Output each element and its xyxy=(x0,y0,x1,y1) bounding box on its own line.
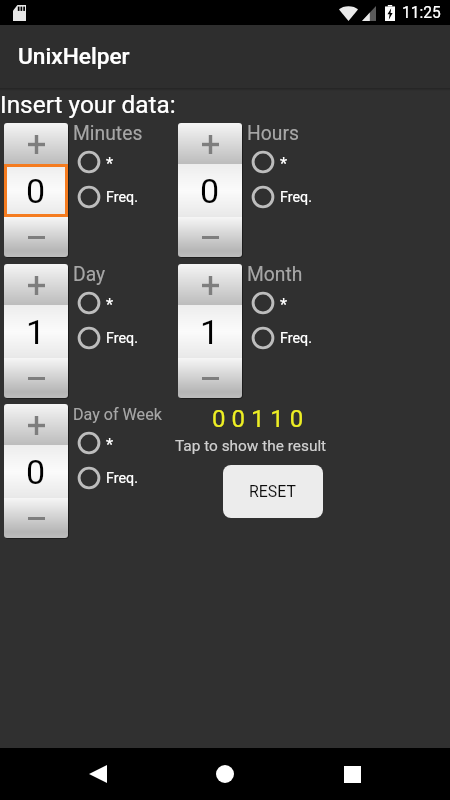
button[interactable]: Freq. xyxy=(251,326,312,350)
staticText: Freq. xyxy=(106,330,138,347)
staticText: Minutes xyxy=(73,122,143,145)
button[interactable]: Decrease xyxy=(178,358,242,398)
button[interactable]: * xyxy=(251,150,288,174)
button[interactable]: Freq. xyxy=(77,466,138,490)
button[interactable]: Increase xyxy=(4,264,68,305)
staticText: 1 xyxy=(26,312,46,352)
staticText: * xyxy=(106,435,114,454)
button[interactable]: Decrease xyxy=(178,217,242,257)
button[interactable]: 1 xyxy=(4,305,68,358)
button[interactable]: 1 xyxy=(178,305,242,358)
staticText: 11:25 xyxy=(402,4,441,22)
button[interactable]: Recents xyxy=(326,748,378,800)
staticText: * xyxy=(106,154,114,173)
button[interactable]: Freq. xyxy=(77,185,138,209)
staticText: 1 xyxy=(200,312,220,352)
staticText: Freq. xyxy=(106,470,138,487)
button[interactable]: Increase xyxy=(4,404,68,445)
button[interactable]: Increase xyxy=(178,123,242,164)
button[interactable]: 0 xyxy=(178,164,242,217)
staticText: 0 0 1 1 0 xyxy=(212,405,304,433)
button[interactable]: * xyxy=(77,150,114,174)
staticText: UnixHelper xyxy=(18,43,130,70)
button[interactable]: Increase xyxy=(4,123,68,164)
staticText: 0 xyxy=(26,452,46,492)
button[interactable]: Decrease xyxy=(4,217,68,257)
staticText: Month xyxy=(247,263,303,286)
staticText: Day of Week xyxy=(73,405,162,424)
button[interactable]: * xyxy=(77,431,114,455)
button[interactable]: * xyxy=(77,291,114,315)
button[interactable]: Back xyxy=(72,748,124,800)
staticText: Freq. xyxy=(280,330,312,347)
button[interactable]: * xyxy=(251,291,288,315)
button[interactable]: 0 xyxy=(4,164,68,217)
button[interactable]: Freq. xyxy=(251,185,312,209)
staticText: * xyxy=(106,295,114,314)
staticText: Day xyxy=(73,263,106,286)
staticText: Insert your data: xyxy=(0,90,176,119)
staticText: 0 xyxy=(26,171,46,211)
staticText: 0 xyxy=(200,171,220,211)
button[interactable]: Freq. xyxy=(77,326,138,350)
staticText: Freq. xyxy=(280,189,312,206)
staticText: Hours xyxy=(247,122,299,145)
button[interactable]: RESET xyxy=(223,465,323,518)
staticText: RESET xyxy=(249,482,296,501)
staticText: Tap to show the result xyxy=(175,437,327,455)
button[interactable]: Home xyxy=(199,748,251,800)
staticText: * xyxy=(280,154,288,173)
staticText: * xyxy=(280,295,288,314)
button[interactable]: 0 xyxy=(4,445,68,498)
staticText: Freq. xyxy=(106,189,138,206)
button[interactable]: Decrease xyxy=(4,358,68,398)
button[interactable]: Increase xyxy=(178,264,242,305)
button[interactable]: Decrease xyxy=(4,498,68,538)
